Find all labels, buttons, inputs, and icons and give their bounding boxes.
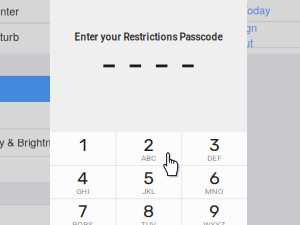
staticText: 2 [143, 135, 153, 155]
staticText: DEF [207, 153, 221, 163]
button[interactable]: Notification Center [0, 5, 71, 16]
button[interactable]: Sign Out [236, 29, 276, 40]
staticText: Do Not Disturb [0, 29, 19, 44]
staticText: 9 [209, 201, 219, 222]
staticText: 3 [209, 135, 219, 155]
button[interactable]: 4 [50, 165, 116, 198]
button[interactable]: Display & Brightness [0, 136, 110, 147]
staticText: GHI [76, 187, 89, 196]
staticText: 6 [209, 168, 219, 188]
staticText: 1 [79, 135, 86, 155]
staticText: Today [241, 2, 270, 18]
button[interactable]: Today [241, 4, 281, 15]
staticText: 5 [143, 168, 153, 188]
button[interactable]: 3 [181, 132, 247, 165]
button[interactable]: 1 [50, 132, 116, 165]
staticText: ABC [141, 153, 156, 163]
staticText: JKL [142, 187, 155, 196]
staticText: PQRS [72, 220, 93, 225]
button[interactable]: 8 [116, 198, 181, 225]
staticText: 4 [77, 168, 88, 188]
staticText: WXYZ [203, 220, 225, 225]
staticText: Sign Out [236, 20, 257, 50]
staticText: Display & Brightness [0, 134, 67, 150]
staticText: MNO [205, 187, 224, 196]
staticText: 8 [143, 201, 154, 222]
staticText: 7 [78, 201, 87, 222]
button[interactable]: 7 [50, 198, 116, 225]
button[interactable]: 2 [116, 132, 181, 165]
staticText: TUV [141, 220, 156, 225]
button[interactable]: 5 [116, 165, 181, 198]
button[interactable]: Do Not Disturb [0, 31, 88, 42]
staticText: Notification Center [0, 3, 19, 19]
staticText: Enter your Restrictions Passcode [74, 31, 222, 43]
button[interactable]: 9 [181, 198, 247, 225]
button[interactable]: 6 [181, 165, 247, 198]
